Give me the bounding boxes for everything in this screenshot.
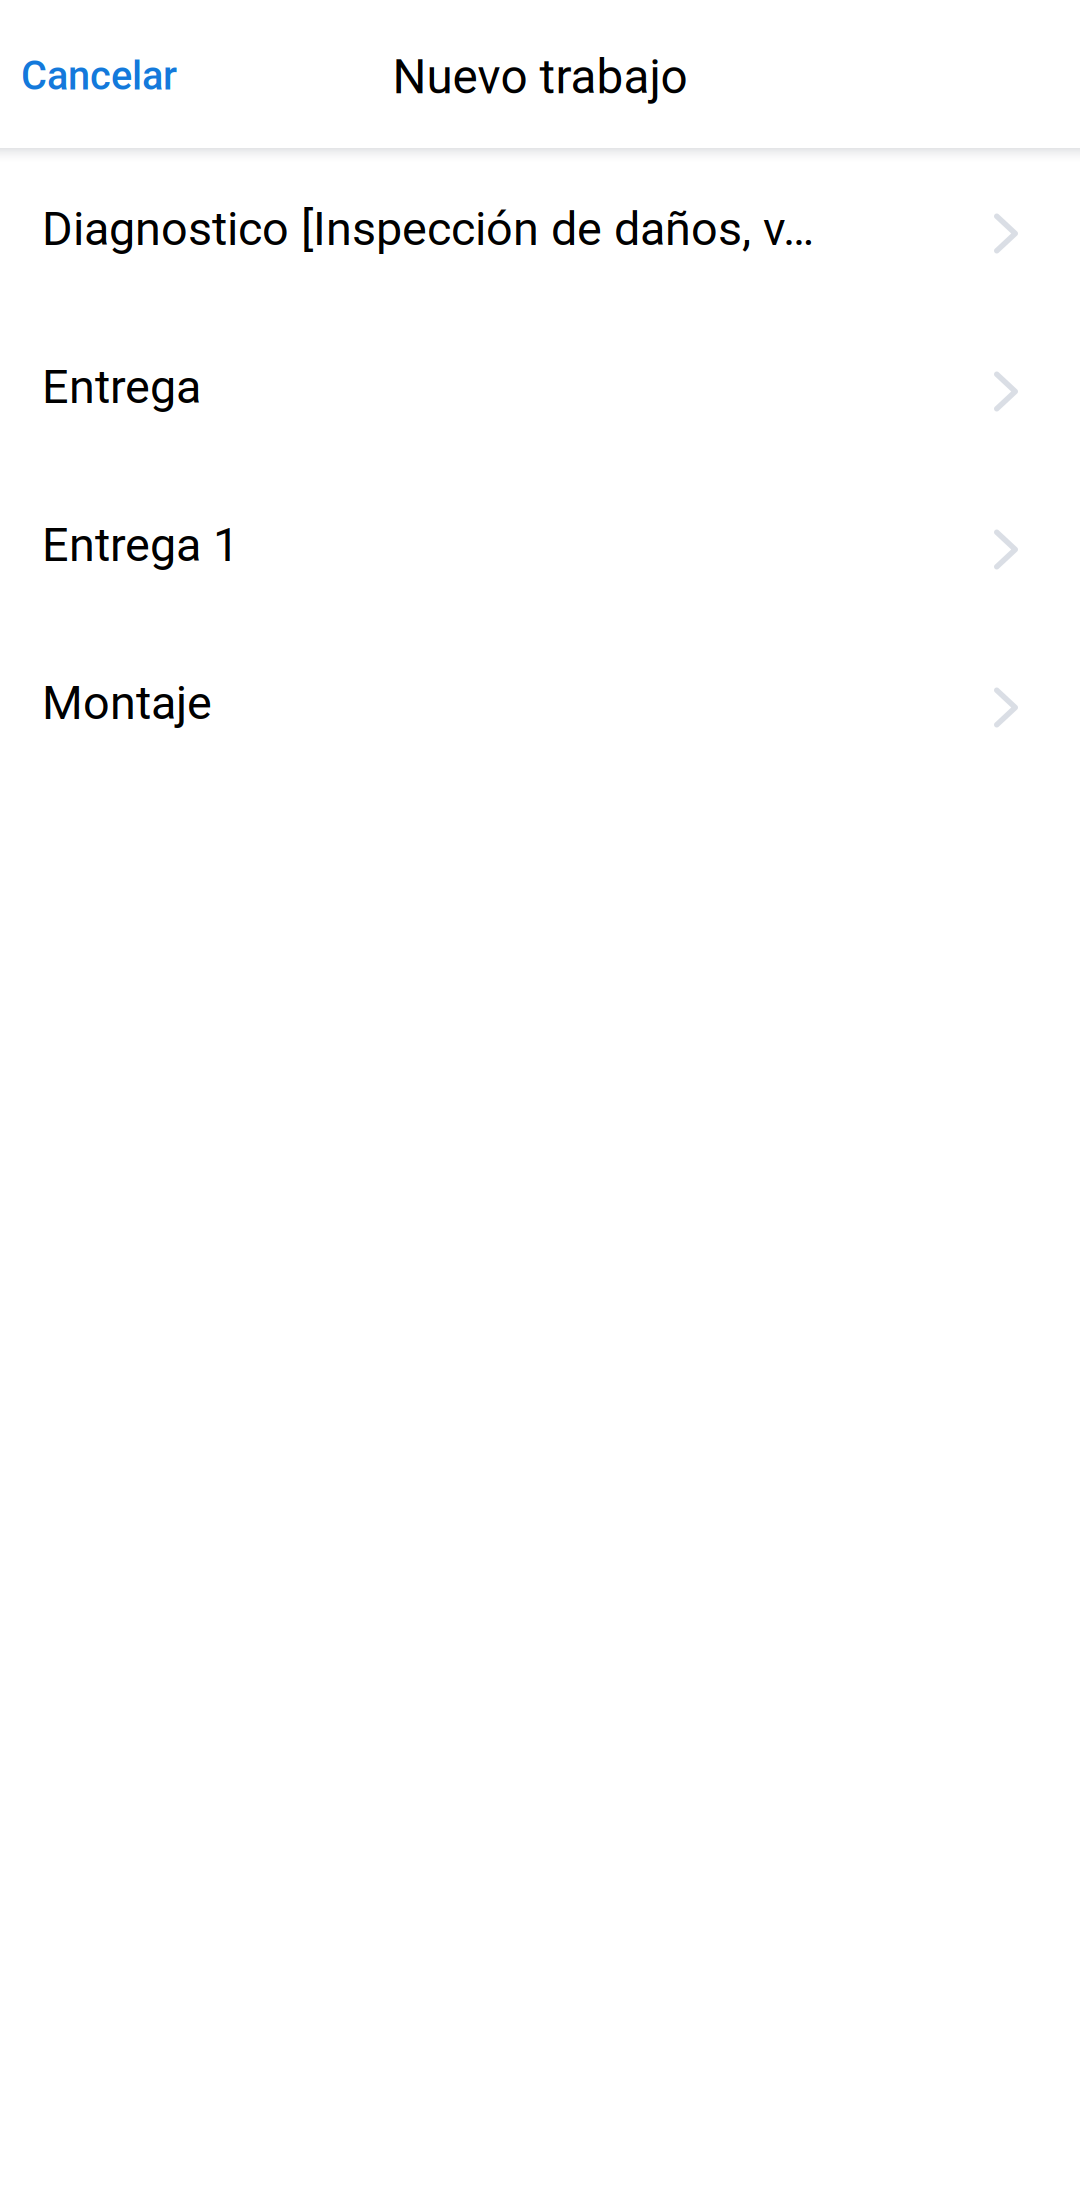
button[interactable]: Entrega 1	[0, 464, 1080, 622]
button[interactable]: Diagnostico [Inspección de daños, v…	[0, 148, 1080, 306]
staticText: Entrega	[42, 360, 201, 414]
staticText: Diagnostico [Inspección de daños, v…	[42, 202, 814, 256]
button[interactable]: Entrega	[0, 306, 1080, 464]
button[interactable]: Cancelar	[0, 0, 198, 148]
button[interactable]: Montaje	[0, 622, 1080, 780]
staticText: Montaje	[42, 676, 212, 730]
staticText: Entrega 1	[42, 518, 239, 572]
staticText: Nuevo trabajo	[392, 49, 687, 105]
staticText: Cancelar	[21, 53, 177, 99]
